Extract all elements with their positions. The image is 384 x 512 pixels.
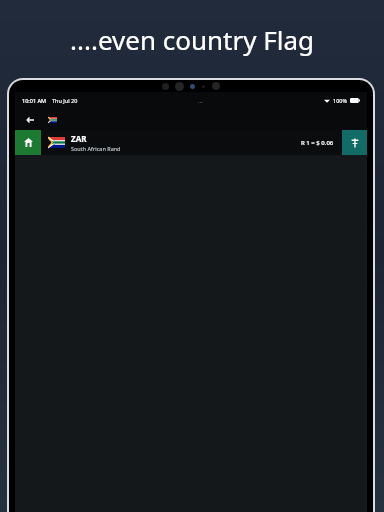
button[interactable]: Home currency (15, 130, 41, 155)
button[interactable]: Country flag (47, 114, 58, 125)
staticText: ZAR (71, 133, 87, 144)
button[interactable]: Home currency (15, 130, 367, 155)
staticText: ....even country Flag (70, 22, 314, 57)
button[interactable]: Back (23, 113, 37, 127)
staticText: 10:01 AM (22, 97, 47, 104)
staticText: South African Rand (71, 145, 121, 152)
staticText: ... (198, 97, 203, 105)
staticText: 100% (333, 97, 348, 104)
button[interactable]: Convert currency (342, 130, 367, 155)
staticText: Thu Jul 20 (52, 97, 78, 104)
staticText: R 1 = $ 0.06 (301, 139, 334, 147)
